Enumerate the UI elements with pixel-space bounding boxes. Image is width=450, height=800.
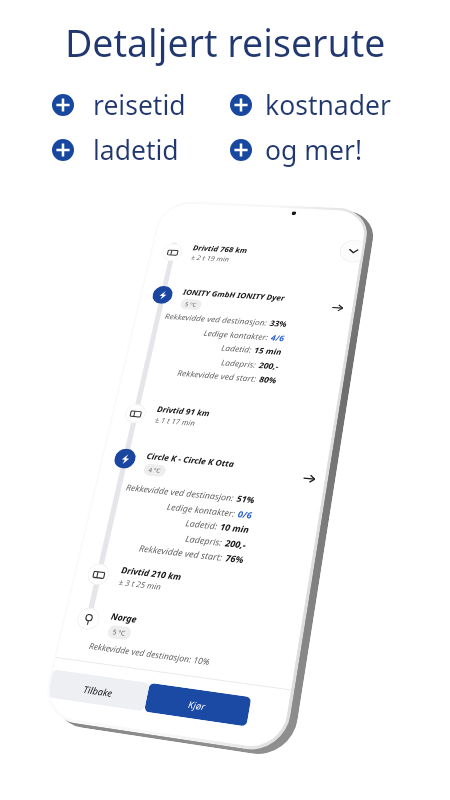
staticText: 80% xyxy=(258,373,278,385)
staticText: 200,- xyxy=(224,536,248,550)
staticText: Kjør xyxy=(187,697,207,713)
staticText: reisetid xyxy=(93,87,186,123)
staticText: 0/6 xyxy=(237,508,253,520)
staticText: Rekkevidde ved start: xyxy=(176,367,258,383)
button[interactable]: Drivtid 91 km xyxy=(111,400,335,444)
staticText: Ledige kontakter: xyxy=(166,500,236,519)
staticText: 10 min xyxy=(219,520,250,535)
button[interactable]: Drivtid 768 km xyxy=(149,241,361,274)
button[interactable]: Circle K - Circle K Otta xyxy=(99,447,327,500)
staticText: 33% xyxy=(269,317,288,329)
staticText: Rekkevidde ved destinasjon: 10% xyxy=(88,640,211,667)
staticText: Tilbake xyxy=(82,682,114,699)
staticText: Ladepris: xyxy=(220,357,257,369)
staticText: Ladetid: xyxy=(221,342,253,354)
staticText: Rekkevidde ved destinasjon: xyxy=(125,481,235,503)
staticText: 15 min xyxy=(253,344,283,357)
staticText: 5 °C xyxy=(184,300,198,308)
staticText: Circle K - Circle K Otta xyxy=(146,451,235,470)
staticText: 51% xyxy=(236,492,256,505)
staticText: Ladetid: xyxy=(185,517,218,531)
button[interactable]: Open charger xyxy=(328,300,346,315)
staticText: 200,- xyxy=(258,359,280,371)
button[interactable]: Kjør xyxy=(144,683,251,726)
staticText: Ladepris: xyxy=(184,532,224,548)
button[interactable]: og mer! xyxy=(230,132,363,168)
button[interactable]: kostnader xyxy=(230,87,391,123)
staticText: Norge xyxy=(110,610,138,626)
button[interactable]: Drivtid 210 km xyxy=(73,559,308,615)
staticText: Drivtid 91 km xyxy=(156,404,211,419)
staticText: Drivtid 768 km xyxy=(192,243,249,255)
staticText: 4/6 xyxy=(270,332,285,343)
button[interactable]: Collapse xyxy=(338,239,363,263)
staticText: ± 1 t 17 min xyxy=(154,414,196,428)
button[interactable]: reisetid xyxy=(52,87,186,123)
staticText: Rekkevidde ved start: xyxy=(138,542,224,563)
button[interactable]: Tilbake xyxy=(46,669,150,711)
staticText: 76% xyxy=(225,551,245,565)
staticText: 5 °C xyxy=(112,627,127,638)
staticText: og mer! xyxy=(265,132,363,168)
button[interactable]: Open charger xyxy=(299,470,318,486)
button[interactable]: ladetid xyxy=(52,132,179,168)
staticText: 4 °C xyxy=(148,466,162,475)
staticText: IONITY GmbH IONITY Dyer xyxy=(182,287,286,303)
staticText: kostnader xyxy=(265,87,391,123)
staticText: ± 2 t 19 min xyxy=(190,252,230,263)
staticText: Rekkevidde ved destinasjon: xyxy=(164,311,268,327)
staticText: ladetid xyxy=(93,132,179,168)
button[interactable]: IONITY GmbH IONITY Dyer xyxy=(138,285,354,326)
staticText: Detaljert reiserute xyxy=(65,17,386,68)
staticText: Ledige kontakter: xyxy=(203,327,269,342)
staticText: ± 3 t 25 min xyxy=(118,576,162,592)
staticText: Drivtid 210 km xyxy=(120,564,183,583)
